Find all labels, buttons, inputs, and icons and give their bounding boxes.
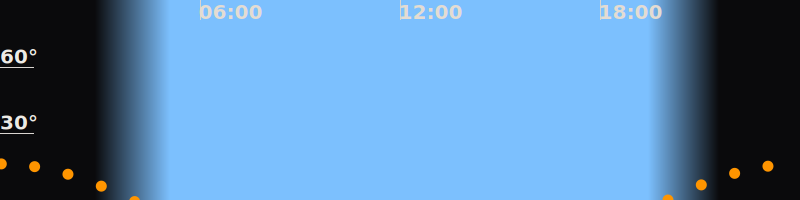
staticText: 60° bbox=[0, 45, 38, 68]
staticText: 12:00 bbox=[398, 0, 462, 24]
staticText: 18:00 bbox=[598, 0, 662, 24]
staticText: 30° bbox=[0, 111, 38, 134]
button[interactable]: Hourly forecast chart bbox=[0, 0, 800, 200]
staticText: 06:00 bbox=[198, 0, 262, 24]
